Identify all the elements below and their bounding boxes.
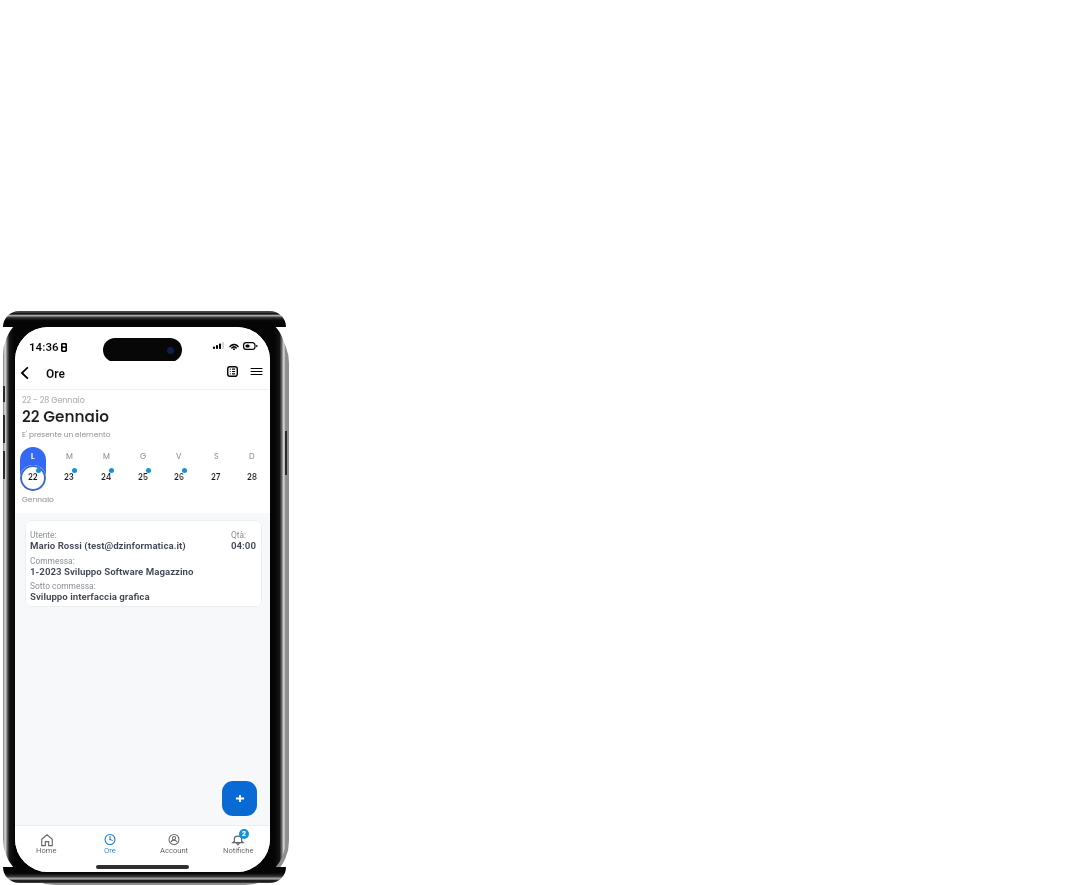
staticText: Sviluppo interfaccia grafica [30,591,150,602]
button[interactable]: Ore [78,825,142,872]
staticText: 14:36 [29,340,59,353]
staticText: 22 Gennaio [22,406,109,427]
button[interactable]: Add [222,781,257,816]
staticText: 27 [211,471,221,483]
staticText: 28 [247,471,258,483]
staticText: Qtà: [231,530,247,540]
button[interactable]: Account [142,825,206,872]
button[interactable]: S [202,443,230,486]
staticText: Gennaio [22,494,54,504]
staticText: 22 - 28 Gennaio [22,395,85,406]
staticText: Ore [46,367,66,381]
button[interactable]: M [55,443,83,486]
staticText: M [103,451,110,462]
button[interactable]: L [19,443,47,486]
staticText: Ore [104,846,116,855]
staticText: 22 [28,471,38,483]
staticText: Sotto commessa: [30,581,96,591]
staticText: 04:00 [231,540,256,551]
staticText: D [249,451,255,462]
staticText: 2 [242,830,246,838]
staticText: G [140,451,147,462]
staticText: Commessa: [30,556,75,566]
staticText: M [66,451,73,462]
button[interactable]: D [238,443,266,486]
staticText: 25 [138,471,149,483]
staticText: Home [36,846,57,855]
staticText: Notifiche [223,846,254,855]
button[interactable]: 2 [206,825,270,872]
staticText: E' presente un elemento [22,429,111,439]
button[interactable]: Table view [224,363,241,380]
button[interactable]: G [129,443,157,486]
staticText: 26 [174,471,185,483]
button[interactable]: V [165,443,193,486]
staticText: 23 [64,471,74,483]
button[interactable]: Utente: [25,520,262,607]
staticText: 24 [101,471,112,483]
staticText: Account [160,846,189,855]
staticText: V [176,451,182,462]
button[interactable]: Back [16,361,32,384]
staticText: S [214,451,219,462]
button[interactable]: Home [15,825,78,872]
button[interactable]: Menu [248,363,265,380]
staticText: L [31,451,35,462]
staticText: Utente: [30,530,57,540]
staticText: 1-2023 Sviluppo Software Magazzino [30,566,194,577]
button[interactable]: M [92,443,120,486]
staticText: Mario Rossi (test@dzinformatica.it) [30,540,186,551]
